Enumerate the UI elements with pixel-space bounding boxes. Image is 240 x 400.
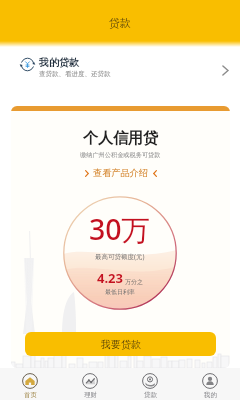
staticText: 最低日利率: [105, 288, 135, 296]
other: 我的贷款: [222, 65, 229, 76]
staticText: 查贷款、看进度、还贷款: [39, 70, 111, 78]
button[interactable]: 我的贷款: [0, 48, 240, 84]
staticText: 理财: [84, 391, 97, 399]
staticText: 贷款: [144, 391, 157, 399]
staticText: 我的贷款: [39, 56, 79, 69]
staticText: 首页: [24, 391, 37, 399]
staticText: 4.23: [97, 269, 123, 287]
button[interactable]: 查看产品介绍: [82, 166, 160, 180]
staticText: 缴纳广州公积金或税务可贷款: [80, 151, 161, 159]
staticText: 30万: [89, 210, 151, 249]
button[interactable]: 我的: [180, 368, 240, 400]
staticText: 我的: [204, 391, 217, 399]
button[interactable]: 首页: [0, 368, 60, 400]
staticText: 万分之: [125, 278, 143, 286]
staticText: 贷款: [109, 16, 131, 30]
staticText: 查看产品介绍: [93, 167, 149, 179]
button[interactable]: 理财: [60, 368, 120, 400]
staticText: 我要贷款: [101, 338, 141, 351]
button[interactable]: 贷款: [120, 368, 180, 400]
staticText: 最高可贷额度(元): [95, 252, 145, 261]
staticText: 个人信用贷: [83, 129, 158, 148]
button[interactable]: 我要贷款: [25, 332, 216, 356]
